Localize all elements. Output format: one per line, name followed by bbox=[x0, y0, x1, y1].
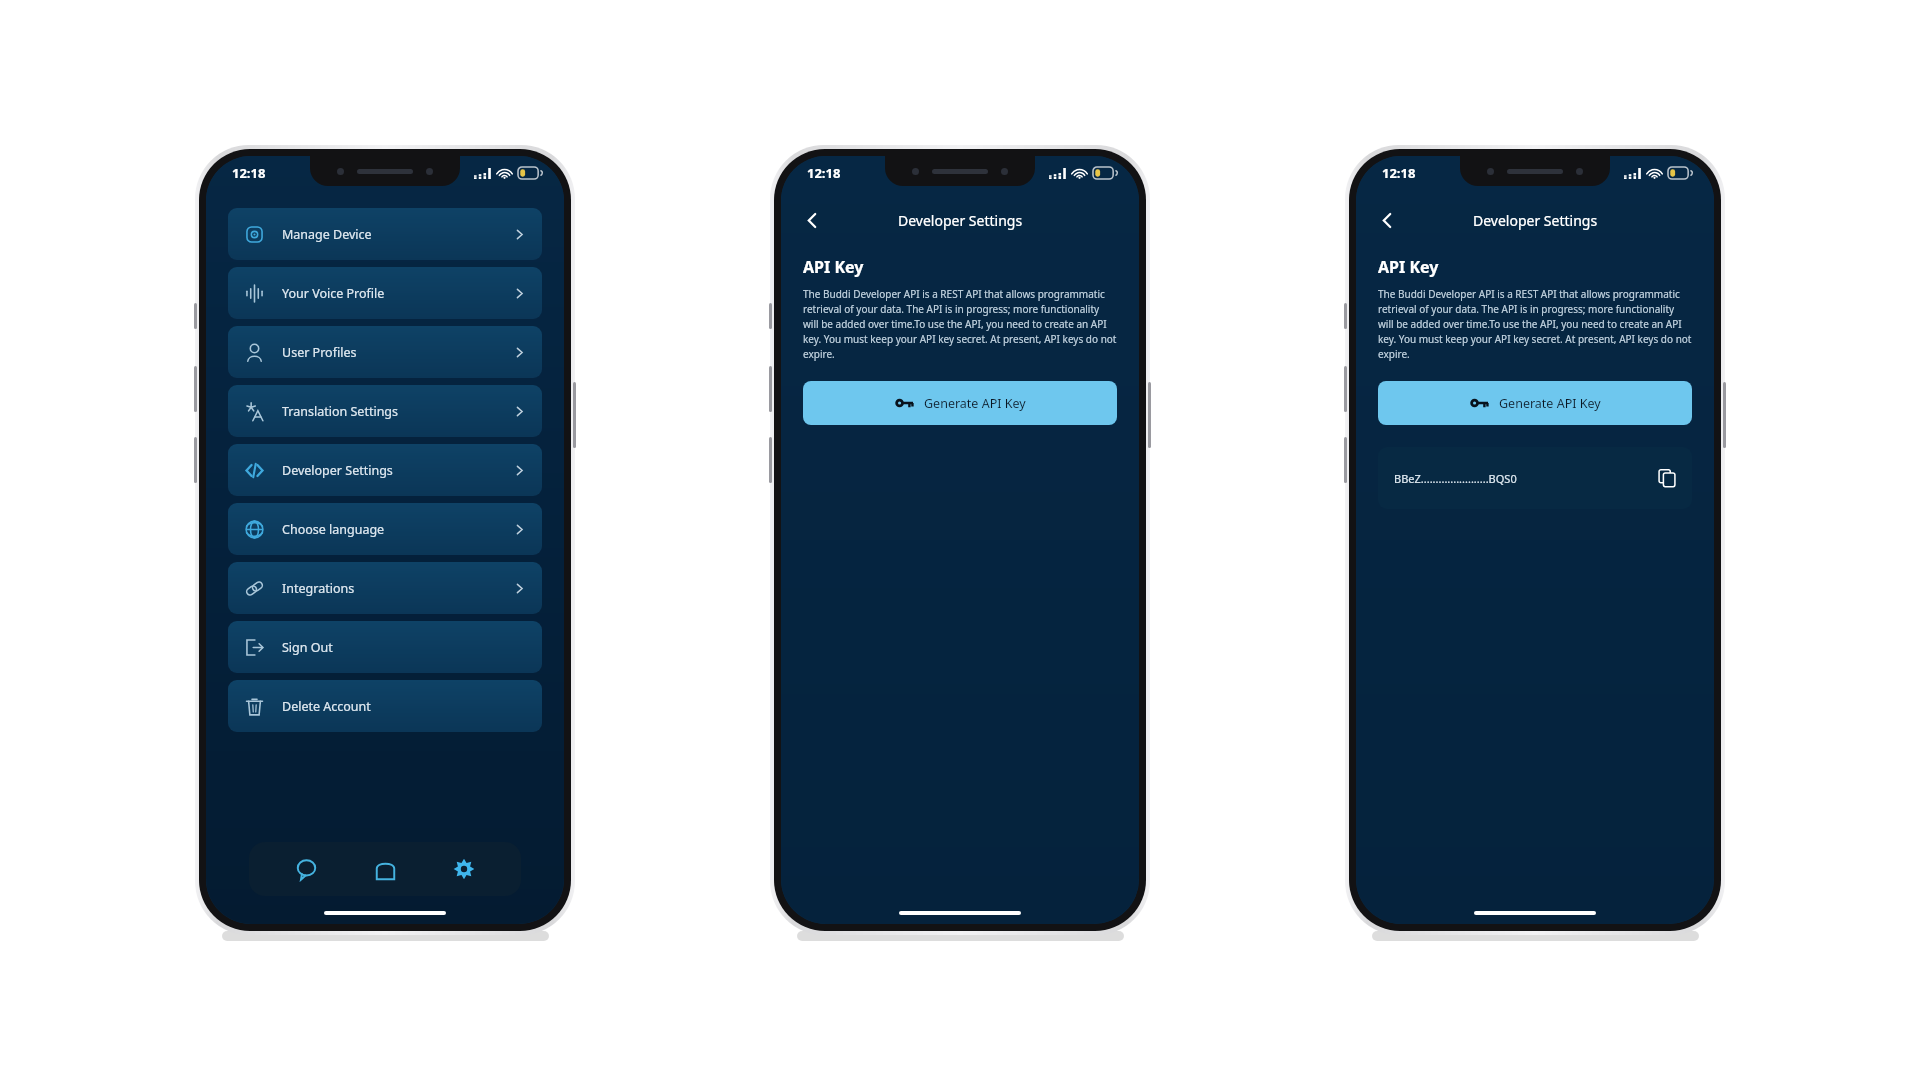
staticText: API Key bbox=[803, 256, 864, 278]
button[interactable]: Generate API Key bbox=[803, 381, 1117, 425]
staticText: Developer Settings bbox=[282, 462, 393, 479]
staticText: 12:18 bbox=[1382, 164, 1416, 182]
other: Copy API key bbox=[1658, 469, 1676, 487]
button[interactable]: Chat bbox=[284, 847, 328, 891]
staticText: Developer Settings bbox=[898, 211, 1023, 230]
button[interactable]: Developer Settings bbox=[228, 444, 542, 496]
staticText: 12:18 bbox=[807, 164, 841, 182]
staticText: Developer Settings bbox=[1473, 211, 1598, 230]
button[interactable]: User Profiles bbox=[228, 326, 542, 378]
staticText: The Buddi Developer API is a REST API th… bbox=[803, 287, 1117, 361]
staticText: Delete Account bbox=[282, 698, 371, 715]
staticText: User Profiles bbox=[282, 344, 357, 361]
staticText: Choose language bbox=[282, 521, 385, 538]
button[interactable]: Generate API Key bbox=[1378, 381, 1692, 425]
staticText: 12:18 bbox=[232, 164, 266, 182]
button[interactable]: Manage Device bbox=[228, 208, 542, 260]
button[interactable]: BBeZ.......................BQS0 bbox=[1378, 447, 1692, 509]
staticText: The Buddi Developer API is a REST API th… bbox=[1378, 287, 1692, 361]
button[interactable]: Back bbox=[1370, 203, 1404, 237]
staticText: API Key bbox=[1378, 256, 1439, 278]
button[interactable]: Choose language bbox=[228, 503, 542, 555]
button[interactable]: Back bbox=[795, 203, 829, 237]
staticText: Sign Out bbox=[282, 639, 333, 656]
button[interactable]: Settings bbox=[442, 847, 486, 891]
button[interactable]: Translation Settings bbox=[228, 385, 542, 437]
staticText: Manage Device bbox=[282, 226, 372, 243]
staticText: Generate API Key bbox=[924, 395, 1026, 412]
button[interactable]: Integrations bbox=[228, 562, 542, 614]
staticText: Your Voice Profile bbox=[282, 285, 385, 302]
staticText: Generate API Key bbox=[1499, 395, 1601, 412]
staticText: Integrations bbox=[282, 580, 355, 597]
button[interactable]: Delete Account bbox=[228, 680, 542, 732]
button[interactable]: Home bbox=[363, 847, 407, 891]
staticText: BBeZ.......................BQS0 bbox=[1394, 471, 1517, 486]
button[interactable]: Sign Out bbox=[228, 621, 542, 673]
button[interactable]: Your Voice Profile bbox=[228, 267, 542, 319]
staticText: Translation Settings bbox=[282, 403, 399, 420]
